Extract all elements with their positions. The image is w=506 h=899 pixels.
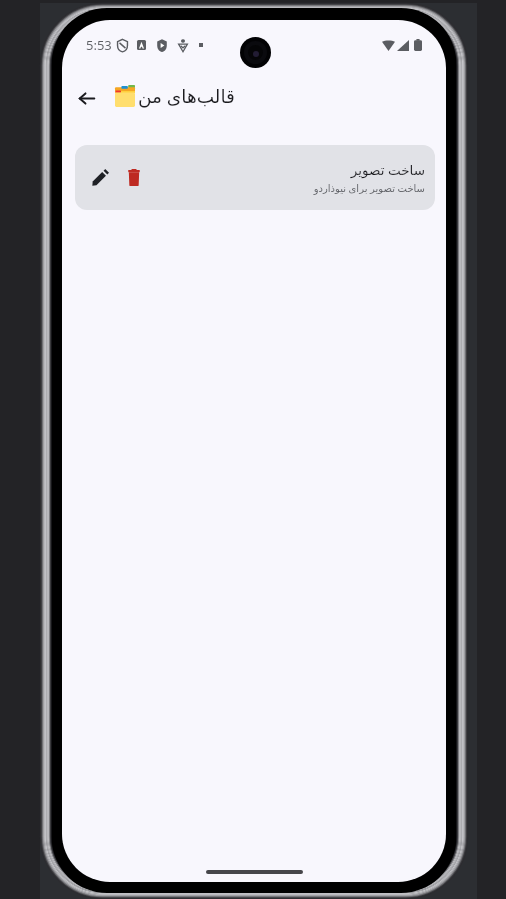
staticText: ساخت تصویر [350, 161, 425, 179]
button[interactable]: Delete [115, 158, 153, 196]
button[interactable]: Edit [81, 158, 119, 196]
staticText: قالب‌های من [138, 83, 235, 108]
staticText: ساخت تصویر برای نیوذاردو [313, 181, 425, 195]
button[interactable]: Edit [75, 145, 435, 210]
button[interactable]: Back [64, 76, 108, 120]
staticText: 5:53 [86, 36, 112, 54]
